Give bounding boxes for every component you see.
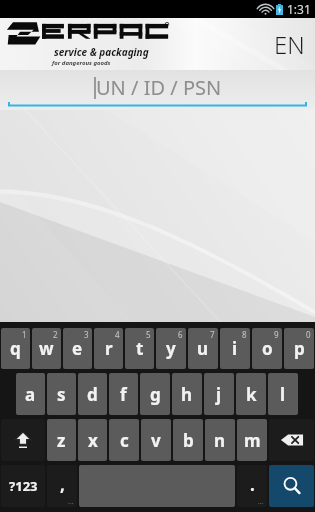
staticText: z: [57, 429, 66, 452]
staticText: h: [181, 383, 193, 406]
staticText: s: [57, 383, 66, 406]
staticText: 9: [274, 329, 279, 340]
staticText: f: [120, 383, 127, 406]
staticText: 1: [22, 329, 27, 340]
button[interactable]: y: [156, 328, 186, 369]
staticText: 8: [242, 329, 247, 340]
staticText: i: [232, 337, 238, 360]
staticText: k: [246, 383, 257, 406]
staticText: d: [87, 383, 98, 406]
button[interactable]: v: [141, 419, 171, 461]
button[interactable]: ,: [47, 465, 77, 507]
button[interactable]: z: [47, 419, 76, 461]
button[interactable]: UN / ID / PSN: [0, 70, 315, 110]
button[interactable]: q: [1, 328, 30, 369]
staticText: n: [214, 429, 226, 452]
staticText: …: [258, 497, 264, 507]
button[interactable]: c: [109, 419, 139, 461]
staticText: .: [250, 473, 255, 496]
staticText: m: [244, 429, 261, 452]
staticText: v: [151, 429, 161, 452]
staticText: c: [120, 429, 129, 452]
staticText: ?123: [9, 477, 38, 495]
button[interactable]: Search: [269, 465, 314, 507]
button[interactable]: Shift: [1, 419, 45, 461]
button[interactable]: b: [173, 419, 203, 461]
staticText: ,: [60, 473, 65, 496]
staticText: 7: [210, 329, 215, 340]
button[interactable]: i: [220, 328, 250, 369]
staticText: y: [166, 337, 176, 360]
button[interactable]: r: [94, 328, 123, 369]
button[interactable]: j: [204, 373, 234, 415]
button[interactable]: d: [78, 373, 107, 415]
staticText: b: [183, 429, 194, 452]
staticText: l: [280, 383, 286, 406]
staticText: r: [105, 337, 113, 360]
staticText: j: [216, 383, 222, 406]
staticText: o: [262, 337, 273, 360]
button[interactable]: k: [236, 373, 266, 415]
staticText: q: [10, 337, 21, 360]
staticText: u: [197, 337, 209, 360]
button[interactable]: l: [268, 373, 298, 415]
staticText: 6: [178, 329, 183, 340]
staticText: service & packaging: [54, 45, 149, 59]
staticText: a: [25, 383, 36, 406]
staticText: w: [39, 337, 54, 360]
staticText: UN / ID / PSN: [96, 74, 222, 101]
button[interactable]: s: [47, 373, 76, 415]
staticText: t: [136, 337, 144, 360]
staticText: x: [88, 429, 98, 452]
button[interactable]: Backspace: [269, 419, 314, 461]
button[interactable]: x: [78, 419, 107, 461]
button[interactable]: EN: [264, 22, 315, 67]
button[interactable]: o: [252, 328, 282, 369]
staticText: for dangerous goods: [52, 59, 111, 67]
button[interactable]: f: [109, 373, 138, 415]
button[interactable]: a: [16, 373, 45, 415]
staticText: p: [294, 337, 305, 360]
button[interactable]: p: [284, 328, 314, 369]
staticText: 3: [84, 329, 89, 340]
staticText: 0: [306, 329, 311, 340]
staticText: 4: [115, 329, 120, 340]
button[interactable]: t: [125, 328, 154, 369]
staticText: e: [72, 337, 83, 360]
button[interactable]: ?123: [1, 465, 45, 507]
staticText: 2: [53, 329, 58, 340]
button[interactable]: .: [237, 465, 267, 507]
button[interactable]: m: [237, 419, 267, 461]
button[interactable]: n: [205, 419, 235, 461]
staticText: …: [68, 497, 74, 507]
staticText: 5: [146, 329, 151, 340]
button[interactable]: h: [172, 373, 202, 415]
staticText: g: [150, 383, 161, 406]
button[interactable]: e: [63, 328, 92, 369]
staticText: 1:31: [287, 1, 311, 17]
button[interactable]: g: [140, 373, 170, 415]
button[interactable]: w: [32, 328, 61, 369]
staticText: EN: [274, 28, 305, 61]
button[interactable]: u: [188, 328, 218, 369]
